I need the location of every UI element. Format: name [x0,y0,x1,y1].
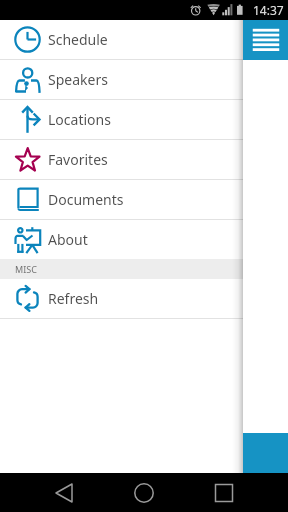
button[interactable]: Recent apps [201,473,247,512]
button[interactable]: Documents [0,180,243,219]
button[interactable]: Refresh [0,279,243,318]
button[interactable]: Home [121,473,167,512]
staticText: 14:37 [253,2,284,18]
staticText: About [48,230,88,249]
button[interactable]: Back [40,473,86,512]
button[interactable]: Speakers [0,60,243,99]
staticText: Schedule [48,30,108,49]
button[interactable]: Schedule [0,20,243,59]
staticText: MISC [15,263,37,275]
button[interactable]: Favorites [0,140,243,179]
staticText: Favorites [48,150,108,169]
staticText: Speakers [48,70,108,89]
staticText: Refresh [48,289,99,308]
staticText: Documents [48,190,124,209]
button[interactable]: About [0,220,243,259]
button[interactable]: Open navigation menu [252,25,280,55]
staticText: Locations [48,110,111,129]
button[interactable]: Locations [0,100,243,139]
